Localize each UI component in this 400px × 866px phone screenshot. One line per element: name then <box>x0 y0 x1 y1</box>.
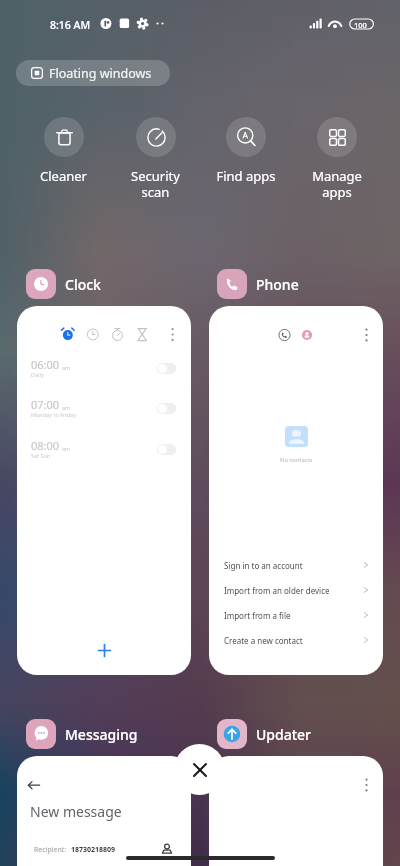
button[interactable]: Import from an older device <box>209 578 383 602</box>
staticText: Daily <box>31 371 44 378</box>
button[interactable]: Create a new contact <box>209 628 383 652</box>
button[interactable]: Add alarm <box>82 628 126 672</box>
button[interactable]: 06:00 <box>17 306 191 675</box>
staticText: 100 <box>354 20 367 30</box>
staticText: Import from an older device <box>224 585 330 596</box>
staticText: am <box>62 445 71 452</box>
staticText: am <box>62 404 71 411</box>
button[interactable]: Cleaner <box>18 117 108 202</box>
button[interactable]: No contacts <box>209 306 383 675</box>
button[interactable]: Updater <box>217 719 312 749</box>
staticText: 18730218809 <box>71 845 116 855</box>
staticText: Find apps <box>216 167 276 185</box>
staticText: Sign in to an account <box>224 560 303 571</box>
staticText: Clock <box>65 275 101 294</box>
button[interactable]: New message <box>17 756 191 866</box>
staticText: Monday to Friday <box>31 411 76 418</box>
staticText: No contacts <box>280 456 313 464</box>
staticText: Import from a file <box>224 610 291 621</box>
button[interactable] <box>209 756 383 866</box>
button[interactable]: Clock <box>26 269 101 299</box>
button[interactable]: Find apps <box>201 117 291 202</box>
button[interactable]: Messaging <box>26 719 138 749</box>
button[interactable]: Close all <box>174 744 225 795</box>
button[interactable]: Sign in to an account <box>209 553 383 577</box>
button[interactable] <box>157 444 176 455</box>
button[interactable] <box>157 403 176 414</box>
staticText: Sat Sun <box>31 452 51 459</box>
button[interactable]: 07:00 <box>17 397 191 429</box>
button[interactable]: Security scan <box>110 117 200 202</box>
staticText: Phone <box>256 275 299 294</box>
staticText: Updater <box>256 725 312 744</box>
staticText: Create a new contact <box>224 635 303 646</box>
staticText: Security scan <box>131 167 180 200</box>
staticText: New message <box>30 802 122 821</box>
staticText: 8:16 AM <box>50 18 91 32</box>
button[interactable]: Import from a file <box>209 603 383 627</box>
button[interactable]: 06:00 <box>17 357 191 389</box>
staticText: Messaging <box>65 725 138 744</box>
staticText: Floating windows <box>49 65 152 82</box>
staticText: Recipient: <box>34 845 67 855</box>
button[interactable]: Manage apps <box>292 117 382 202</box>
staticText: Manage apps <box>312 167 362 200</box>
button[interactable]: Phone <box>217 269 299 299</box>
staticText: 08:00 <box>31 438 60 453</box>
staticText: Cleaner <box>40 167 87 185</box>
button[interactable]: 08:00 <box>17 438 191 470</box>
staticText: 06:00 <box>31 357 60 372</box>
staticText: 07:00 <box>31 397 60 412</box>
button[interactable] <box>157 363 176 374</box>
staticText: am <box>62 364 71 371</box>
button[interactable]: Floating windows <box>16 60 170 86</box>
